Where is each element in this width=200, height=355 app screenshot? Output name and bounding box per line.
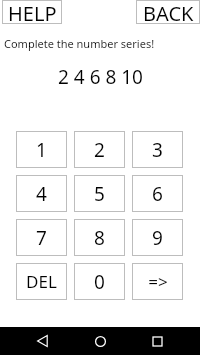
staticText: 8 xyxy=(94,225,105,251)
staticText: 3 xyxy=(152,137,163,163)
staticText: 2 xyxy=(94,137,105,163)
staticText: 1 xyxy=(36,137,47,163)
button[interactable]: => xyxy=(132,263,183,300)
button[interactable]: 5 xyxy=(74,175,125,212)
button[interactable]: 1 xyxy=(16,131,67,168)
button[interactable]: Home xyxy=(86,327,114,355)
button[interactable]: 9 xyxy=(132,219,183,256)
staticText: Complete the number series! xyxy=(4,36,155,51)
staticText: 0 xyxy=(94,269,105,295)
button[interactable]: DEL xyxy=(16,263,67,300)
staticText: BACK xyxy=(143,0,194,24)
staticText: 2 4 6 8 10 xyxy=(58,64,143,90)
staticText: DEL xyxy=(26,270,57,293)
button[interactable]: 0 xyxy=(74,263,125,300)
staticText: HELP xyxy=(8,0,57,24)
button[interactable]: Recent apps xyxy=(143,327,171,355)
staticText: 6 xyxy=(152,181,163,207)
staticText: 9 xyxy=(152,225,163,251)
button[interactable]: 8 xyxy=(74,219,125,256)
button[interactable]: 7 xyxy=(16,219,67,256)
staticText: 4 xyxy=(36,181,47,207)
button[interactable]: 4 xyxy=(16,175,67,212)
staticText: => xyxy=(148,270,168,293)
button[interactable]: Back xyxy=(29,327,57,355)
button[interactable]: 2 xyxy=(74,131,125,168)
button[interactable]: 6 xyxy=(132,175,183,212)
button[interactable]: HELP xyxy=(2,0,62,24)
button[interactable]: 3 xyxy=(132,131,183,168)
staticText: 7 xyxy=(36,225,47,251)
button[interactable]: BACK xyxy=(136,0,200,24)
staticText: 5 xyxy=(94,181,105,207)
